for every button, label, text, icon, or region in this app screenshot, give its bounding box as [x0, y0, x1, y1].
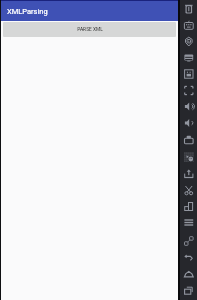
button[interactable]: PARSE XML [3, 22, 176, 37]
button[interactable]: Upload file [180, 168, 197, 182]
button[interactable]: Record [180, 236, 197, 250]
button[interactable]: Overview [180, 286, 197, 300]
button[interactable]: Extended controls [180, 217, 197, 231]
button[interactable]: Rotate [180, 134, 197, 148]
button[interactable]: Zoom [180, 84, 197, 98]
button[interactable]: Location [180, 34, 197, 48]
button[interactable]: Volume up [180, 100, 197, 114]
staticText: PARSE XML [77, 27, 103, 33]
button[interactable]: Android Bot [180, 18, 197, 32]
button[interactable]: Volume down [180, 117, 197, 131]
button[interactable]: Performance [180, 201, 197, 215]
button[interactable]: Snapshot [180, 185, 197, 199]
button[interactable]: Display [180, 50, 197, 64]
button[interactable]: Virtual sensors [180, 151, 197, 165]
button[interactable]: Power [180, 2, 197, 16]
button[interactable]: Back [180, 253, 197, 267]
button[interactable]: Screenshot [180, 67, 197, 81]
staticText: XMLParsing [7, 7, 48, 16]
button[interactable]: Home [180, 270, 197, 284]
